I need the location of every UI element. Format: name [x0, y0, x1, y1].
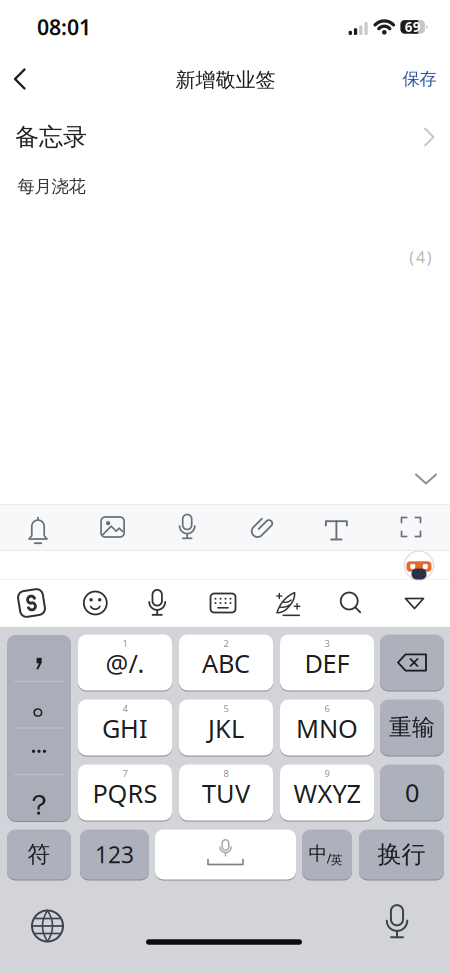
button[interactable]: 8	[179, 764, 273, 821]
staticText: 6	[324, 702, 329, 714]
staticText: 。	[29, 675, 69, 724]
staticText: 每月浇花	[17, 176, 85, 197]
staticText: 8	[223, 767, 228, 779]
button[interactable]: 3	[280, 634, 374, 691]
staticText: 换行	[377, 840, 425, 869]
button[interactable]: 0	[380, 764, 444, 821]
staticText: 中	[308, 842, 327, 865]
button[interactable]: Sogou	[8, 580, 54, 626]
button[interactable]: Text style	[311, 504, 361, 550]
button[interactable]: Reminder	[13, 504, 63, 550]
button[interactable]: Space	[155, 829, 296, 880]
staticText: 1	[122, 637, 127, 649]
button[interactable]: 。	[7, 682, 71, 728]
button[interactable]: Attachment	[237, 504, 287, 550]
staticText: 3	[324, 637, 329, 649]
button[interactable]: 1	[78, 634, 172, 691]
button[interactable]: ，	[7, 635, 71, 681]
button[interactable]: 6	[280, 699, 374, 756]
button[interactable]: Back	[0, 0, 44, 40]
button[interactable]: 中/英	[302, 829, 352, 880]
staticText: 5	[223, 702, 228, 714]
staticText: 符	[27, 841, 50, 868]
staticText: TUV	[202, 776, 250, 810]
button[interactable]: Voice	[162, 504, 212, 550]
staticText: 保存	[402, 68, 436, 90]
staticText: MNO	[296, 711, 358, 745]
staticText: GHI	[102, 711, 148, 745]
button[interactable]: ？	[7, 775, 71, 821]
button[interactable]: 7	[78, 764, 172, 821]
staticText: 0	[405, 776, 419, 809]
staticText: 7	[122, 767, 127, 779]
button[interactable]: Next keyboard	[25, 904, 69, 948]
staticText: 英	[330, 853, 342, 867]
staticText: 2	[223, 637, 228, 649]
button[interactable]: Fullscreen	[386, 504, 436, 550]
staticText: ，	[15, 619, 62, 676]
staticText: 新增敬业签	[175, 68, 275, 92]
button[interactable]: Hide keyboard	[391, 580, 437, 626]
staticText: ABC	[202, 646, 250, 680]
button[interactable]: 123	[80, 829, 149, 880]
staticText: @/.	[105, 646, 144, 680]
button[interactable]: 5	[179, 699, 273, 756]
staticText: (	[409, 246, 414, 268]
staticText: 4	[416, 246, 425, 268]
button[interactable]: Photo	[88, 504, 138, 550]
button[interactable]: Search	[328, 580, 374, 626]
staticText: 123	[95, 839, 134, 869]
button[interactable]: 保存	[402, 68, 436, 90]
staticText: 重输	[389, 714, 435, 741]
button[interactable]: 4	[78, 699, 172, 756]
button[interactable]: 重输	[380, 699, 444, 756]
button[interactable]: 符	[7, 829, 71, 880]
staticText: WXYZ	[293, 776, 360, 810]
staticText: DEF	[304, 646, 349, 680]
button[interactable]: 2	[179, 634, 273, 691]
button[interactable]: Dictate	[378, 903, 422, 947]
staticText: 9	[324, 767, 329, 779]
button[interactable]: Delete	[380, 634, 444, 691]
staticText: 08:01	[37, 13, 91, 41]
button[interactable]: Collapse	[416, 474, 436, 483]
button[interactable]: Keyboard layout	[200, 580, 246, 626]
staticText: 4	[122, 702, 127, 714]
staticText: 备忘录	[15, 122, 87, 152]
button[interactable]: …	[7, 728, 71, 774]
button[interactable]: Emoji	[72, 580, 118, 626]
button[interactable]: 9	[280, 764, 374, 821]
button[interactable]: Handwriting	[264, 580, 310, 626]
staticText: )	[427, 246, 432, 268]
staticText: JKL	[208, 711, 244, 745]
button[interactable]: 换行	[359, 829, 444, 880]
staticText: ？	[25, 788, 53, 822]
button[interactable]: 备忘录	[0, 122, 450, 152]
staticText: PQRS	[92, 776, 157, 810]
staticText: 69	[405, 18, 421, 36]
button[interactable]: Dictation	[136, 580, 182, 626]
